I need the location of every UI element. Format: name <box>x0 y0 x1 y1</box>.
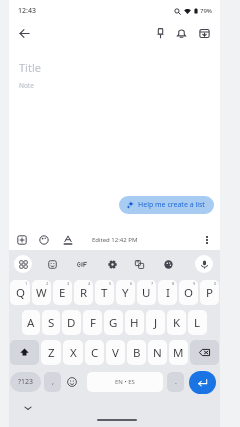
staticText: S <box>48 315 55 331</box>
staticText: 2 <box>46 281 49 286</box>
button[interactable]: ?123 <box>10 372 41 392</box>
button[interactable]: K <box>167 310 186 335</box>
button[interactable]: Pin <box>149 22 171 44</box>
button[interactable]: Help me create a list <box>119 196 214 214</box>
staticText: K <box>173 315 181 331</box>
button[interactable]: Enter <box>189 371 216 394</box>
button[interactable]: I <box>158 280 177 305</box>
button[interactable]: , <box>44 372 61 392</box>
button[interactable]: GIF <box>73 255 91 273</box>
button[interactable]: Q <box>10 280 30 305</box>
button[interactable]: L <box>188 310 207 335</box>
staticText: G <box>109 315 118 331</box>
button[interactable]: Apps <box>14 255 32 273</box>
button[interactable]: Voice input <box>195 255 213 273</box>
staticText: Title <box>19 60 41 75</box>
button[interactable]: Emoji <box>63 372 81 392</box>
button[interactable]: S <box>42 310 60 335</box>
button[interactable]: M <box>169 340 188 365</box>
button[interactable]: Translate <box>130 255 148 273</box>
staticText: Y <box>122 285 129 301</box>
staticText: 3 <box>67 281 70 286</box>
staticText: 7 <box>151 281 154 286</box>
staticText: 5 <box>109 281 112 286</box>
button[interactable]: V <box>106 340 125 365</box>
button[interactable]: G <box>104 310 123 335</box>
staticText: H <box>130 315 139 331</box>
button[interactable]: N <box>148 340 167 365</box>
staticText: 79% <box>200 7 212 15</box>
staticText: C <box>91 345 99 361</box>
button[interactable]: H <box>125 310 144 335</box>
button[interactable]: Y <box>116 280 135 305</box>
button[interactable]: Settings <box>103 255 121 273</box>
staticText: 12:43 <box>18 6 36 16</box>
button[interactable]: Z <box>41 340 61 365</box>
button[interactable]: F <box>83 310 102 335</box>
button[interactable]: Backspace <box>190 340 219 365</box>
staticText: 9 <box>193 281 196 286</box>
button[interactable]: Archive <box>193 22 215 44</box>
button[interactable]: Formatting <box>59 231 77 249</box>
staticText: N <box>153 345 162 361</box>
staticText: L <box>194 315 201 331</box>
staticText: U <box>142 285 151 301</box>
staticText: EN • ES <box>115 378 135 386</box>
staticText: , <box>52 377 54 387</box>
staticText: X <box>70 345 77 361</box>
staticText: A <box>27 315 35 331</box>
staticText: Q <box>16 285 25 301</box>
staticText: ?123 <box>18 377 34 387</box>
button[interactable]: Stickers <box>43 255 61 273</box>
staticText: E <box>59 285 66 301</box>
button[interactable]: E <box>53 280 72 305</box>
button[interactable]: B <box>127 340 146 365</box>
button[interactable]: O <box>179 280 198 305</box>
button[interactable]: Hide keyboard <box>19 399 37 417</box>
staticText: P <box>206 285 213 301</box>
button[interactable]: W <box>32 280 51 305</box>
button[interactable]: C <box>85 340 104 365</box>
staticText: 1 <box>25 281 28 286</box>
staticText: Edited 12:42 PM <box>92 236 138 244</box>
button[interactable]: P <box>200 280 219 305</box>
button[interactable]: Themes <box>159 255 177 273</box>
staticText: F <box>90 315 96 331</box>
staticText: O <box>184 285 193 301</box>
button[interactable]: R <box>74 280 93 305</box>
button[interactable]: T <box>95 280 114 305</box>
staticText: D <box>67 315 76 331</box>
staticText: 0 <box>214 281 217 286</box>
button[interactable]: EN • ES <box>87 372 163 392</box>
staticText: V <box>112 345 119 361</box>
staticText: B <box>133 345 141 361</box>
button[interactable]: . <box>167 372 184 392</box>
button[interactable]: Background options <box>35 231 53 249</box>
button[interactable]: J <box>146 310 165 335</box>
staticText: I <box>166 285 170 301</box>
staticText: . <box>175 377 177 387</box>
staticText: M <box>173 345 184 361</box>
staticText: Note <box>19 81 34 90</box>
button[interactable]: Back <box>13 22 35 44</box>
button[interactable]: Shift <box>10 340 39 365</box>
button[interactable]: More options <box>198 231 216 249</box>
staticText: 8 <box>172 281 175 286</box>
button[interactable]: Add <box>13 231 31 249</box>
staticText: 4 <box>88 281 91 286</box>
staticText: T <box>101 285 108 301</box>
button[interactable]: X <box>63 340 83 365</box>
staticText: R <box>80 285 88 301</box>
button[interactable]: D <box>62 310 81 335</box>
staticText: Help me create a list <box>138 200 205 210</box>
staticText: J <box>154 315 158 331</box>
staticText: W <box>36 285 47 301</box>
button[interactable]: A <box>22 310 40 335</box>
staticText: Z <box>48 345 55 361</box>
button[interactable]: Reminder <box>170 22 192 44</box>
button[interactable]: U <box>137 280 156 305</box>
staticText: 6 <box>130 281 133 286</box>
